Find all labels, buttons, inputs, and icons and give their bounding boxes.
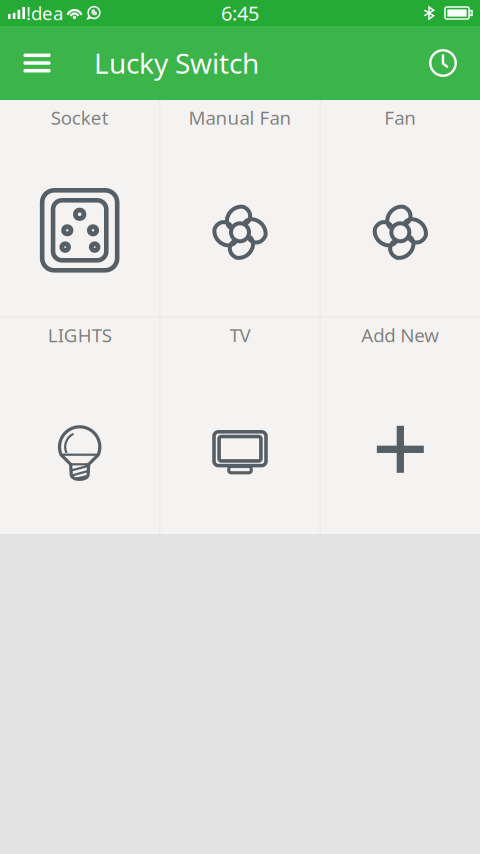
button[interactable]: Fan <box>321 100 480 316</box>
staticText: !dea <box>26 1 63 25</box>
button[interactable]: Menu <box>12 26 62 100</box>
staticText: Lucky Switch <box>94 44 259 82</box>
staticText: Add New <box>361 323 439 347</box>
button[interactable]: Add New <box>321 317 480 534</box>
staticText: TV <box>229 323 250 347</box>
button[interactable]: History <box>420 26 466 100</box>
button[interactable]: TV <box>160 317 320 534</box>
button[interactable]: Socket <box>0 100 159 316</box>
staticText: Socket <box>51 105 109 130</box>
staticText: 6:45 <box>221 0 259 26</box>
staticText: Manual Fan <box>188 105 291 130</box>
button[interactable]: Lucky Switch <box>62 26 259 100</box>
button[interactable]: Manual Fan <box>160 100 320 316</box>
button[interactable]: LIGHTS <box>0 317 159 534</box>
staticText: Fan <box>384 105 416 130</box>
staticText: LIGHTS <box>48 323 112 347</box>
